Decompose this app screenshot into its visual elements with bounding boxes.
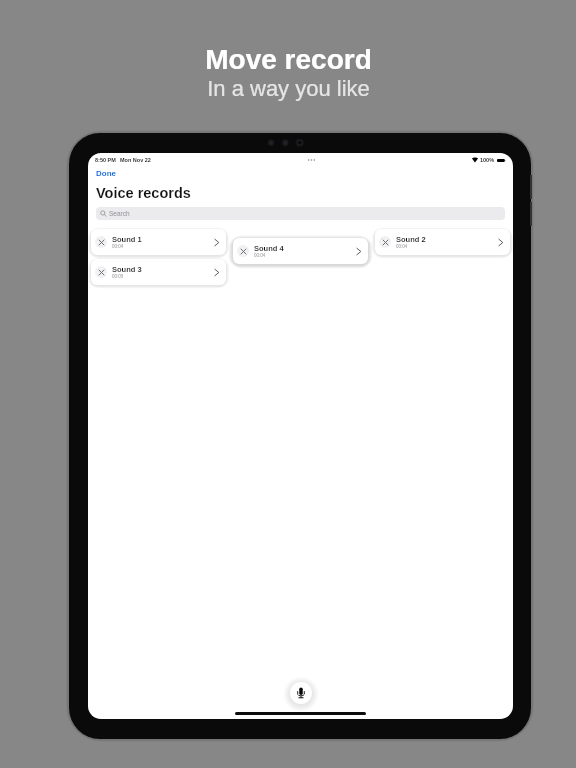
staticText: 100% xyxy=(480,157,495,163)
button[interactable]: Done xyxy=(93,167,119,180)
staticText: Sound 3 xyxy=(112,265,142,273)
button[interactable]: Delete recording xyxy=(379,236,391,248)
staticText: 8:50 PM xyxy=(95,157,116,163)
staticText: Sound 2 xyxy=(396,235,426,243)
staticText: 00:04 xyxy=(112,244,124,249)
button[interactable]: Delete recording xyxy=(95,236,107,248)
staticText: Move record xyxy=(205,44,372,75)
staticText: Sound 4 xyxy=(254,244,284,252)
staticText: Mon Nov 22 xyxy=(120,157,151,163)
button[interactable]: Delete recording xyxy=(91,259,226,285)
button[interactable]: Delete recording xyxy=(95,266,107,278)
button[interactable]: Record xyxy=(290,682,312,704)
staticText: Done xyxy=(96,169,116,178)
staticText: Voice records xyxy=(96,185,191,201)
button[interactable]: Delete recording xyxy=(91,229,226,255)
staticText: Sound 1 xyxy=(112,235,142,243)
staticText: 00:05 xyxy=(112,274,124,279)
button[interactable]: Search xyxy=(96,207,505,220)
button[interactable]: Delete recording xyxy=(237,245,249,257)
button[interactable]: Delete recording xyxy=(375,229,510,255)
staticText: 00:04 xyxy=(254,253,266,258)
staticText: 00:04 xyxy=(396,244,408,249)
staticText: In a way you like xyxy=(207,76,370,101)
button[interactable]: Delete recording xyxy=(233,238,368,264)
staticText: Search xyxy=(109,210,130,217)
